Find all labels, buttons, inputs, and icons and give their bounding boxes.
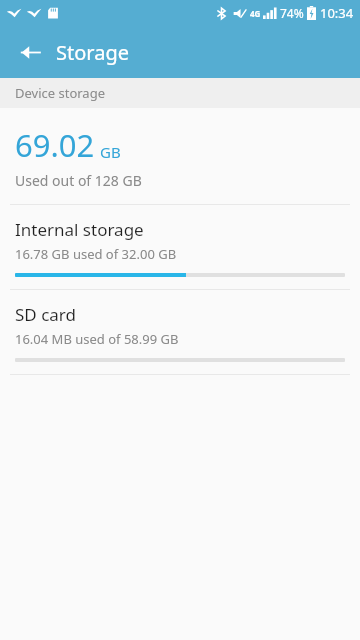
staticText: 16.04 MB used of 58.99 GB xyxy=(15,330,179,348)
staticText: SD card xyxy=(15,303,76,326)
button[interactable]: Back xyxy=(10,32,50,72)
button[interactable]: Internal storage xyxy=(0,205,360,289)
button[interactable]: SD card xyxy=(0,290,360,374)
staticText: 4G xyxy=(250,8,261,19)
staticText: GB xyxy=(100,142,121,162)
staticText: 74% xyxy=(280,5,304,21)
staticText: 69.02 xyxy=(15,124,95,166)
staticText: 16.78 GB used of 32.00 GB xyxy=(15,245,177,263)
staticText: Device storage xyxy=(15,84,105,102)
staticText: Used out of 128 GB xyxy=(15,171,142,190)
staticText: Internal storage xyxy=(15,218,144,241)
staticText: Storage xyxy=(56,39,129,66)
staticText: 10:34 xyxy=(320,4,354,22)
